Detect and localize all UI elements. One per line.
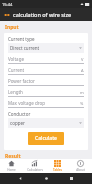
- staticText: calculation of wire size: [13, 11, 72, 18]
- button[interactable]: Max voltage drop: [8, 100, 84, 108]
- staticText: Result: [5, 153, 21, 159]
- button[interactable]: Back: [16, 174, 25, 183]
- button[interactable]: copper: [8, 118, 84, 128]
- staticText: Conductor: [8, 111, 31, 117]
- button[interactable]: Calculate: [28, 132, 64, 145]
- button[interactable]: Power factor: [8, 78, 84, 86]
- button[interactable]: Tables: [46, 159, 69, 173]
- staticText: Calculators: [27, 168, 43, 172]
- button[interactable]: About: [69, 159, 92, 173]
- staticText: copper: [10, 120, 79, 126]
- staticText: Current type: [8, 36, 35, 42]
- staticText: Calculate: [35, 135, 57, 142]
- button[interactable]: Calculators: [23, 159, 46, 173]
- button[interactable]: Length: [8, 89, 84, 97]
- staticText: %: [80, 101, 84, 106]
- button[interactable]: Home: [42, 174, 51, 183]
- staticText: Current: [8, 67, 81, 73]
- staticText: About: [76, 168, 85, 172]
- staticText: 15:44: [2, 2, 13, 7]
- staticText: m: [80, 90, 84, 95]
- staticText: Home: [7, 168, 16, 172]
- button[interactable]: Current: [8, 67, 84, 75]
- staticText: Max voltage drop: [8, 100, 80, 106]
- staticText: Tables: [53, 168, 62, 172]
- other: App icon: [4, 12, 10, 18]
- button[interactable]: Recents: [67, 174, 76, 183]
- button[interactable]: Voltage: [8, 56, 84, 64]
- staticText: A: [81, 68, 84, 73]
- staticText: Direct current: [10, 45, 79, 51]
- staticText: V: [81, 57, 84, 62]
- button[interactable]: Home: [0, 159, 23, 173]
- button[interactable]: Direct current: [8, 43, 84, 53]
- staticText: Power factor: [8, 78, 84, 84]
- staticText: Voltage: [8, 56, 81, 62]
- staticText: Length: [8, 89, 80, 95]
- staticText: Input: [5, 24, 19, 31]
